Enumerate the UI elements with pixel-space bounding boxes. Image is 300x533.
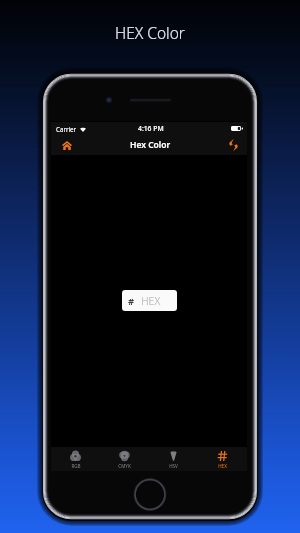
button[interactable]: RGB — [51, 447, 100, 471]
staticText: HEX — [141, 294, 161, 308]
staticText: 4:16 PM — [138, 124, 164, 133]
staticText: # — [128, 295, 135, 308]
button[interactable]: Flash — [226, 138, 240, 152]
button[interactable]: # — [122, 290, 177, 311]
staticText: HEX Color — [115, 22, 185, 43]
staticText: CMYK — [118, 463, 131, 469]
button[interactable]: Home — [60, 139, 73, 152]
button[interactable]: HEX — [198, 447, 247, 471]
button[interactable]: HSV — [149, 447, 198, 471]
staticText: HEX — [218, 463, 227, 469]
staticText: RGB — [71, 463, 81, 469]
button[interactable]: CMYK — [100, 447, 149, 471]
staticText: Carrier — [56, 125, 77, 133]
staticText: HSV — [169, 463, 178, 469]
staticText: Hex Color — [130, 139, 171, 151]
